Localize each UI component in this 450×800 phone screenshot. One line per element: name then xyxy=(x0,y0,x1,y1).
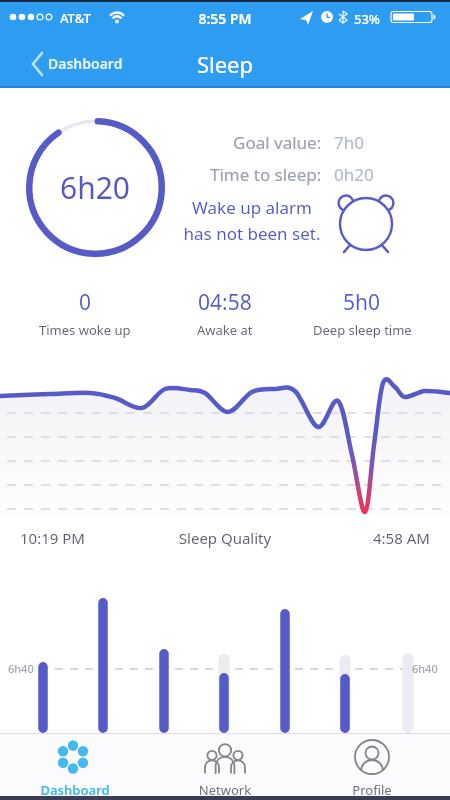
staticText: Time to sleep: xyxy=(210,163,322,186)
staticText: 8:55 PM xyxy=(0,9,450,28)
staticText: Dashboard xyxy=(15,781,135,799)
button[interactable]: Dashboard xyxy=(28,48,128,80)
staticText: 53% xyxy=(354,10,380,28)
staticText: 5h0 xyxy=(343,288,381,317)
staticText: 10:19 PM xyxy=(20,528,85,548)
button[interactable]: Profile xyxy=(312,735,432,797)
staticText: Deep sleep time xyxy=(313,321,412,339)
staticText: 0 xyxy=(79,288,92,317)
staticText: Sleep Quality xyxy=(0,528,450,548)
staticText: Network xyxy=(165,781,285,799)
staticText: Wake up alarm has not been set. xyxy=(178,196,326,245)
staticText: Goal value: xyxy=(233,131,322,154)
staticText: 04:58 xyxy=(198,288,252,317)
staticText: Sleep xyxy=(0,49,450,79)
button[interactable]: 5h0 xyxy=(287,288,437,339)
staticText: 7h0 xyxy=(334,131,364,154)
staticText: 4:58 AM xyxy=(373,528,430,548)
button[interactable]: Dashboard xyxy=(15,735,135,797)
staticText: 6h40 xyxy=(412,661,438,676)
staticText: 0h20 xyxy=(334,163,374,186)
staticText: AT&T xyxy=(60,9,91,27)
staticText: Awake at xyxy=(197,321,253,339)
button[interactable]: 04:58 xyxy=(150,288,300,339)
staticText: Times woke up xyxy=(39,321,131,339)
staticText: 6h40 xyxy=(8,661,34,676)
staticText: Dashboard xyxy=(48,54,123,73)
staticText: Profile xyxy=(312,781,432,799)
button[interactable]: 0 xyxy=(10,288,160,339)
button[interactable]: Network xyxy=(165,735,285,797)
staticText: 6h20 xyxy=(60,167,131,208)
